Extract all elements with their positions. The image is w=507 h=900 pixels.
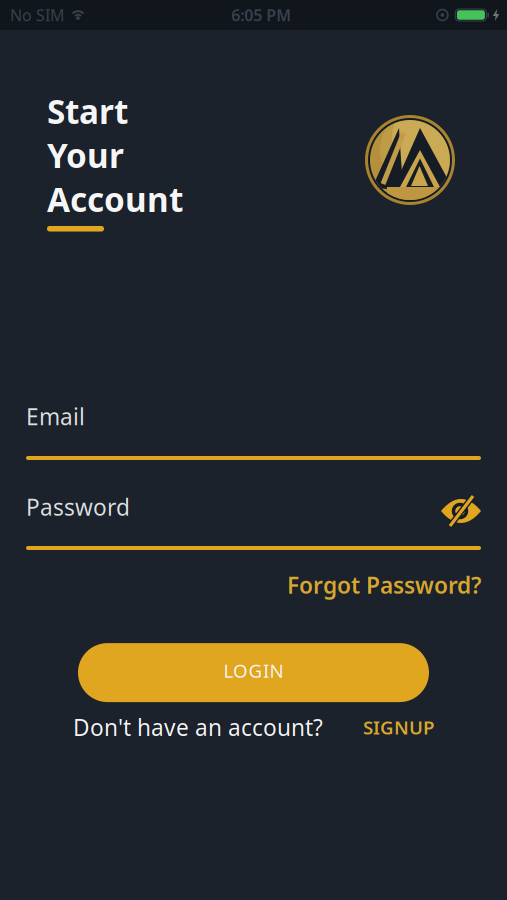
staticText: Forgot Password? [287, 570, 481, 600]
staticText: LOGIN [223, 658, 283, 683]
staticText: Don't have an account? [73, 712, 323, 742]
staticText: Your [47, 133, 124, 177]
button[interactable]: SIGNUP [363, 715, 434, 740]
staticText: Password [26, 492, 130, 522]
staticText: SIGNUP [363, 715, 434, 740]
button[interactable]: Email [0, 405, 507, 460]
staticText: 6:05 PM [231, 4, 291, 26]
button[interactable]: Password [0, 494, 507, 550]
button[interactable] [441, 494, 481, 520]
staticText: Account [47, 177, 183, 221]
button[interactable]: Forgot Password? [287, 570, 481, 600]
staticText: Email [26, 401, 85, 431]
button[interactable]: LOGIN [78, 643, 429, 702]
staticText: No SIM [10, 4, 65, 26]
staticText: Start [47, 89, 128, 133]
